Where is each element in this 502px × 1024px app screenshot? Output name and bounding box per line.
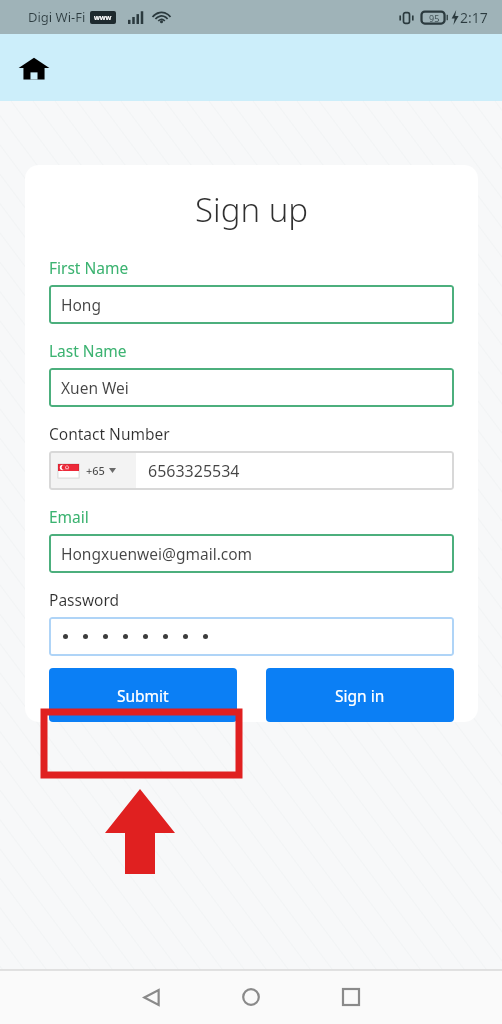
- staticText: Sign in: [335, 685, 385, 706]
- button[interactable]: Back: [123, 970, 179, 1024]
- button[interactable]: Home: [10, 44, 58, 92]
- button[interactable]: +65: [49, 451, 454, 490]
- button[interactable]: Sign in: [266, 668, 454, 722]
- staticText: Email: [49, 506, 89, 527]
- staticText: 6563325534: [148, 460, 240, 482]
- staticText: First Name: [49, 257, 129, 278]
- button[interactable]: [49, 617, 454, 656]
- staticText: WWW: [94, 14, 112, 22]
- staticText: +65: [86, 463, 105, 478]
- staticText: Digi Wi-Fi: [28, 8, 86, 26]
- staticText: Last Name: [49, 340, 127, 361]
- staticText: Password: [49, 589, 120, 610]
- button[interactable]: Recent apps: [323, 970, 379, 1024]
- button[interactable]: Submit: [49, 668, 237, 722]
- button[interactable]: Hong: [49, 285, 454, 324]
- button[interactable]: Hongxuenwei@gmail.com: [49, 534, 454, 573]
- staticText: Hongxuenwei@gmail.com: [61, 543, 253, 564]
- button[interactable]: Home: [223, 970, 279, 1024]
- button[interactable]: Xuen Wei: [49, 368, 454, 407]
- staticText: Xuen Wei: [61, 377, 129, 398]
- staticText: Contact Number: [49, 423, 170, 444]
- staticText: Sign up: [195, 187, 309, 232]
- staticText: Submit: [117, 685, 169, 706]
- staticText: 95: [429, 12, 440, 24]
- staticText: Hong: [61, 294, 101, 315]
- staticText: 2:17: [460, 8, 488, 27]
